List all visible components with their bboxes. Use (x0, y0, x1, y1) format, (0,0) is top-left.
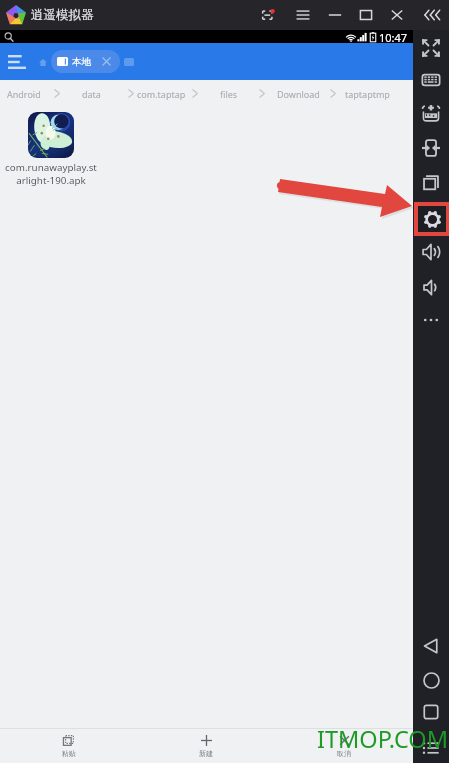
button[interactable]: Install APK (413, 97, 449, 129)
staticText: 本地 (72, 56, 91, 68)
button[interactable]: Settings (418, 206, 446, 232)
button[interactable]: Maximize (358, 7, 374, 23)
button[interactable]: data (82, 88, 101, 100)
button[interactable]: Collapse sidebar (422, 7, 440, 23)
button[interactable]: More (413, 304, 449, 336)
staticText: taptaptmp (345, 88, 390, 100)
button[interactable]: Screenshot (261, 8, 275, 22)
button[interactable]: 取消 (275, 729, 413, 763)
button[interactable]: Menu (3, 48, 31, 76)
button[interactable]: Home (413, 664, 449, 696)
button[interactable]: New tab (121, 54, 137, 70)
staticText: com.runawayplay.starlight-190.apk (4, 161, 98, 187)
staticText: 粘贴 (62, 749, 76, 758)
button[interactable]: Recents (413, 696, 449, 728)
button[interactable]: Volume up (413, 236, 449, 268)
button[interactable]: com.taptap (137, 88, 186, 100)
button[interactable]: files (220, 88, 238, 100)
staticText: Download (277, 88, 320, 100)
button[interactable]: Minimize (327, 7, 343, 23)
button[interactable]: com.runawayplay.starlight-190.apk (4, 112, 98, 187)
button[interactable]: Menu (295, 7, 311, 23)
button[interactable]: Resize (413, 132, 449, 164)
button[interactable]: Volume down (413, 271, 449, 303)
staticText: 逍遥模拟器 (31, 7, 94, 23)
button[interactable]: Multi window (413, 166, 449, 198)
staticText: Android (7, 88, 41, 100)
button[interactable]: Fullscreen (413, 32, 449, 64)
button[interactable]: 本地 (51, 50, 120, 73)
button[interactable]: taptaptmp (345, 88, 390, 100)
staticText: 取消 (337, 749, 351, 758)
button[interactable]: 粘贴 (0, 729, 137, 763)
button[interactable]: Download (277, 88, 320, 100)
staticText: 10:47 (379, 30, 408, 43)
button[interactable]: App list (413, 732, 449, 763)
staticText: 新建 (199, 749, 213, 758)
button[interactable]: Keyboard (413, 64, 449, 96)
button[interactable]: Back (413, 630, 449, 662)
staticText: data (82, 88, 101, 100)
button[interactable]: 新建 (137, 729, 275, 763)
button[interactable]: Close (389, 7, 405, 23)
button[interactable]: Home (36, 55, 50, 69)
staticText: files (220, 88, 238, 100)
button[interactable]: Android (7, 88, 41, 100)
staticText: ITMOP.COM (317, 723, 449, 755)
staticText: com.taptap (137, 88, 186, 100)
